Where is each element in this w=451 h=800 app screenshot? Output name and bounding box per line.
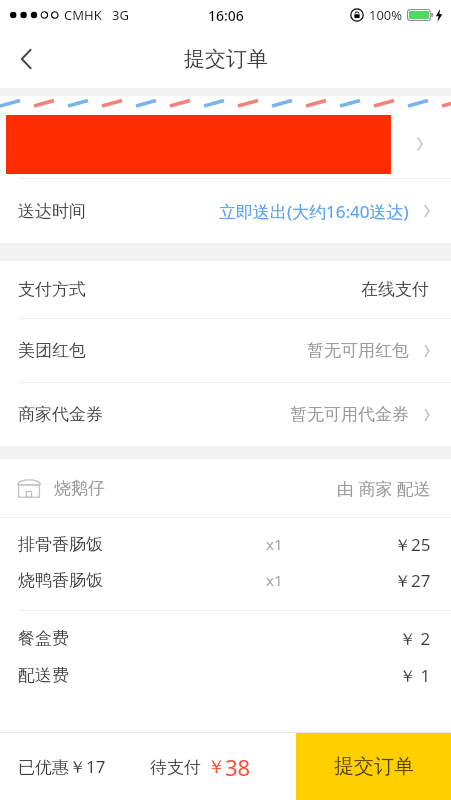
staticText: 100%	[369, 6, 403, 24]
staticText: 16:06	[208, 6, 244, 25]
staticText: CMHK	[64, 6, 102, 24]
staticText: 送达时间	[18, 201, 86, 222]
staticText: 烧鸭香肠饭	[18, 570, 103, 591]
staticText: ￥27	[394, 569, 431, 592]
button[interactable]: 支付方式	[0, 261, 451, 318]
staticText: 提交订单	[184, 46, 268, 72]
staticText: 由 商家 配送	[337, 477, 431, 500]
button[interactable]: 商家代金券	[0, 383, 451, 446]
staticText: 美团红包	[18, 340, 86, 361]
staticText: ￥17	[69, 755, 106, 778]
staticText: 排骨香肠饭	[18, 534, 103, 555]
staticText: 在线支付	[361, 279, 429, 300]
button[interactable]	[0, 110, 451, 178]
staticText: 商家代金券	[18, 404, 103, 425]
staticText: 38	[225, 752, 251, 782]
button[interactable]: 烧鹅仔	[0, 459, 451, 517]
staticText: ￥25	[394, 533, 431, 556]
staticText: ￥ 2	[399, 627, 431, 650]
staticText: ￥	[207, 756, 225, 779]
button[interactable]: 送达时间	[0, 179, 451, 243]
staticText: 立即送出(大约16:40送达)	[219, 200, 409, 223]
staticText: x1	[266, 570, 283, 590]
staticText: 暂无可用红包	[307, 340, 409, 361]
staticText: 已优惠	[18, 757, 69, 778]
staticText: 配送费	[18, 665, 69, 686]
button[interactable]: Back	[0, 31, 56, 87]
staticText: 餐盒费	[18, 628, 69, 649]
button[interactable]: 美团红包	[0, 319, 451, 382]
staticText: ￥ 1	[399, 664, 431, 687]
staticText: 支付方式	[18, 279, 86, 300]
staticText: 待支付	[150, 757, 201, 778]
staticText: 烧鹅仔	[54, 478, 105, 499]
staticText: 暂无可用代金券	[290, 404, 409, 425]
staticText: 提交订单	[334, 754, 414, 779]
staticText: x1	[266, 534, 283, 554]
button[interactable]: 提交订单	[296, 733, 451, 800]
staticText: 3G	[112, 6, 129, 24]
